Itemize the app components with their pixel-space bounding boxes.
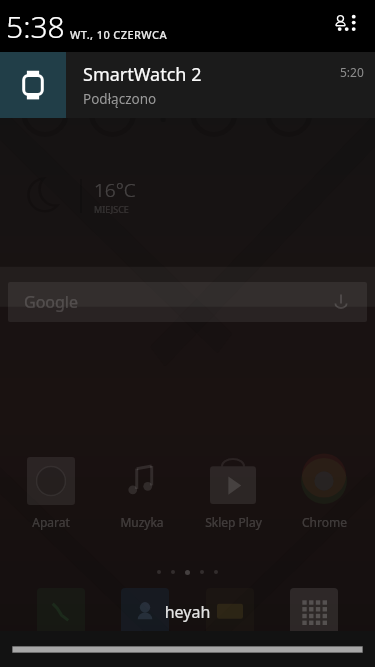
button[interactable]: Aparat (11, 456, 91, 530)
button[interactable]: Close notification shade (0, 631, 375, 667)
button[interactable]: Muzyka (102, 456, 182, 530)
staticText: Sklep Play (205, 514, 262, 530)
button[interactable]: Chrome (284, 456, 364, 530)
staticText: Podłączono (83, 90, 157, 108)
staticText: heyah (0, 601, 375, 623)
staticText: 16°C (94, 177, 136, 203)
button[interactable]: App (37, 588, 85, 636)
staticText: Muzyka (120, 514, 164, 530)
staticText: SmartWatch 2 (83, 62, 202, 87)
staticText: WT., 10 CZERWCA (70, 27, 167, 42)
button[interactable]: Sklep Play (193, 456, 273, 530)
staticText: Google (24, 291, 79, 313)
staticText: MIEJSCE (94, 203, 129, 215)
button[interactable]: App (121, 588, 169, 636)
button[interactable]: App (290, 588, 338, 636)
staticText: 5:38 (6, 6, 65, 47)
staticText: 5:20 (340, 64, 364, 80)
button[interactable]: App (206, 588, 254, 636)
button[interactable]: SmartWatch 2 (0, 52, 375, 118)
button[interactable]: Search (8, 282, 367, 322)
staticText: Chrome (302, 514, 347, 530)
button[interactable]: Quick settings (331, 9, 365, 43)
staticText: Aparat (32, 514, 70, 530)
